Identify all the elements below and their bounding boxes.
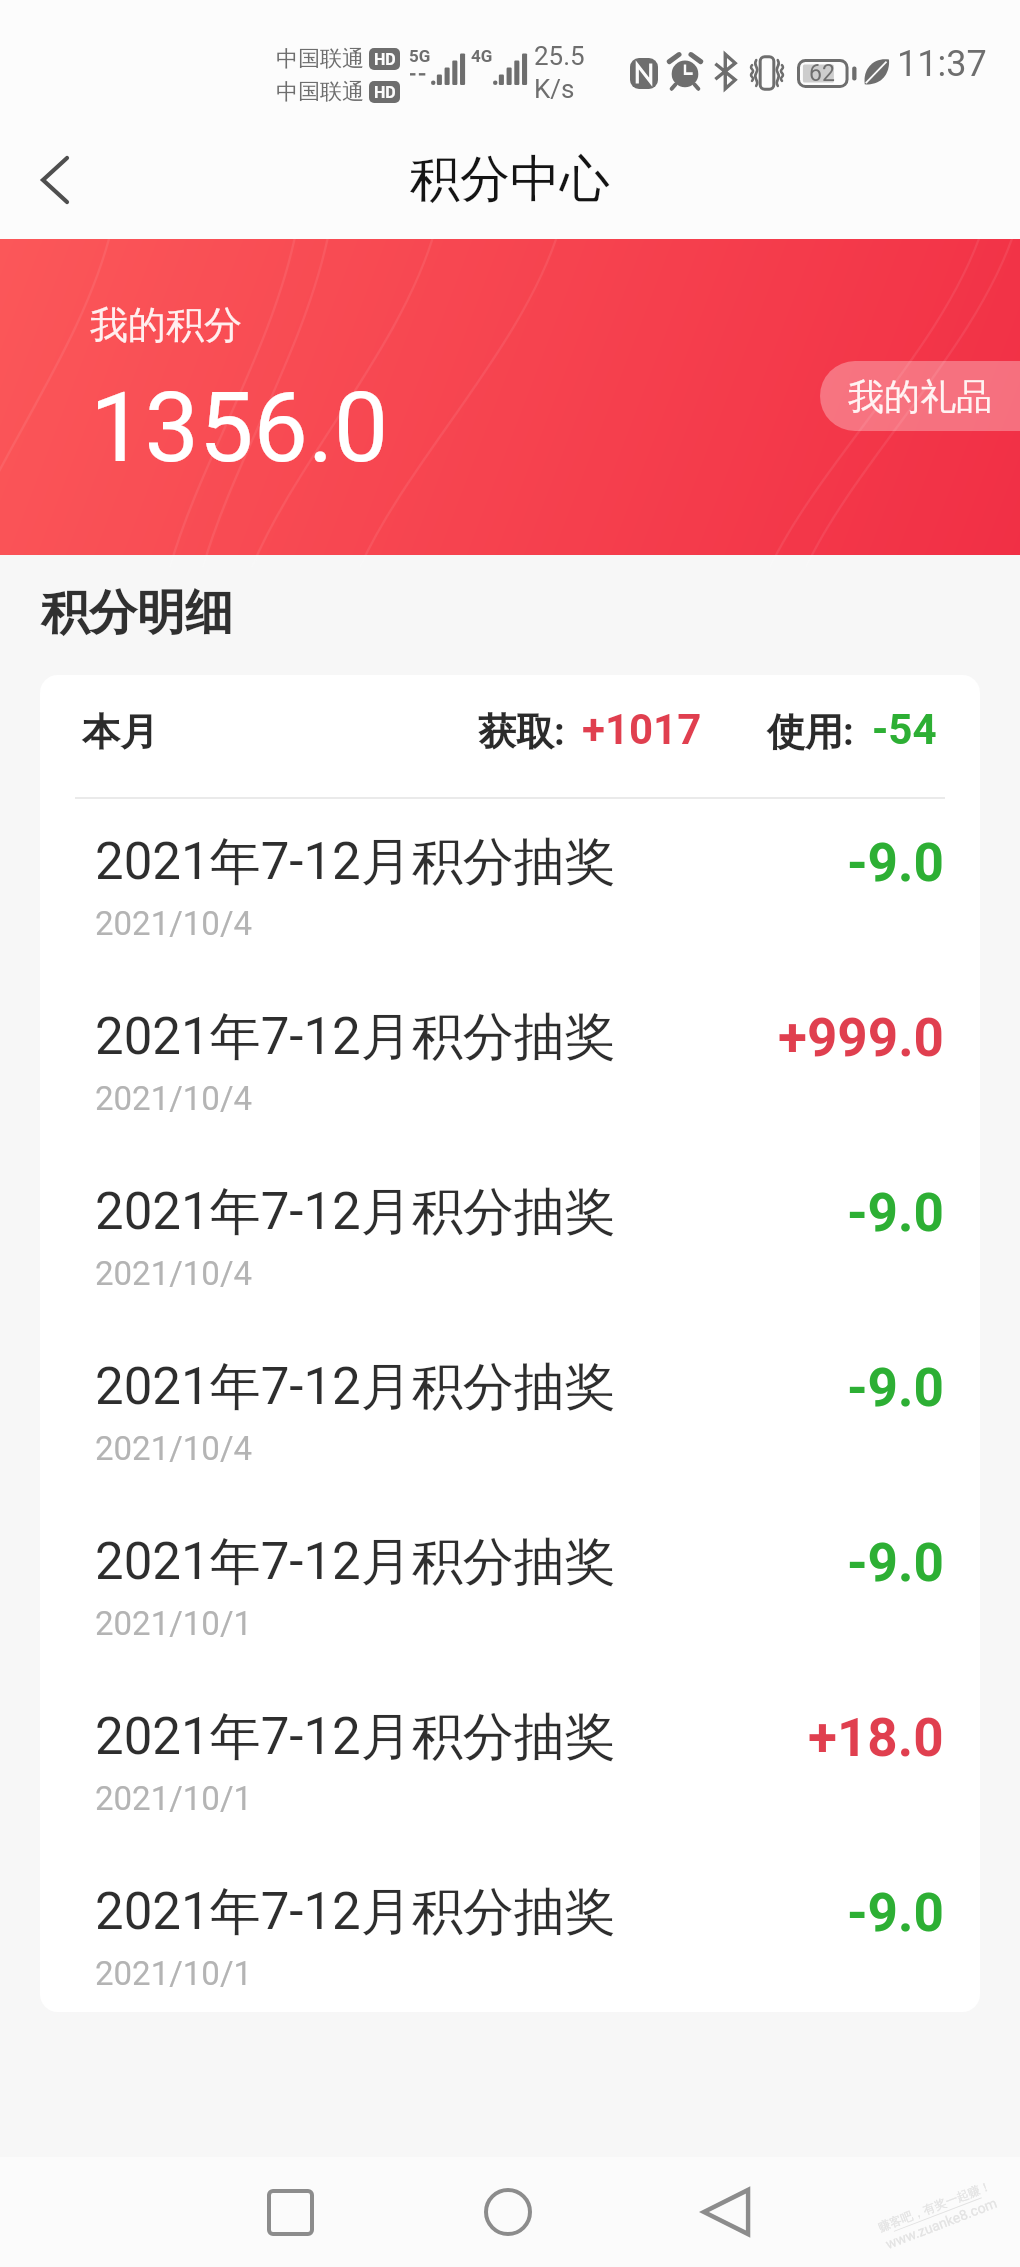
staticText: 2021年7-12月积分抽奖 — [95, 1530, 616, 1594]
staticText: -54 — [872, 705, 937, 754]
staticText: 5G — [409, 46, 431, 66]
staticText: -9.0 — [847, 1357, 944, 1419]
button[interactable]: Home — [465, 2169, 551, 2255]
staticText: 25.5 — [534, 41, 585, 71]
staticText: 使用: — [767, 708, 854, 756]
staticText: +999.0 — [778, 1007, 944, 1069]
staticText: 2021/10/4 — [95, 1079, 253, 1118]
staticText: 积分中心 — [410, 148, 610, 211]
staticText: +18.0 — [808, 1707, 944, 1769]
staticText: 2021年7-12月积分抽奖 — [95, 1355, 616, 1419]
staticText: 2021/10/4 — [95, 1429, 253, 1468]
button[interactable]: 2021年7-12月积分抽奖 — [40, 1149, 980, 1324]
staticText: 我的积分 — [90, 301, 242, 349]
staticText: HD — [374, 83, 396, 102]
staticText: 中国联通 — [276, 78, 364, 106]
staticText: 2021/10/1 — [95, 1779, 253, 1818]
staticText: 2021年7-12月积分抽奖 — [95, 1880, 616, 1944]
button[interactable]: 2021年7-12月积分抽奖 — [40, 1499, 980, 1674]
button[interactable]: Recents — [247, 2169, 333, 2255]
staticText: K/s — [534, 74, 575, 104]
staticText: 中国联通 — [276, 45, 364, 73]
staticText: 2021/10/4 — [95, 1254, 253, 1293]
staticText: 积分明细 — [41, 583, 233, 643]
staticText: +1017 — [582, 705, 702, 754]
staticText: 1356.0 — [90, 371, 389, 485]
staticText: 2021/10/4 — [95, 904, 253, 943]
staticText: www.zuanke8.com — [883, 2195, 999, 2252]
button[interactable]: 2021年7-12月积分抽奖 — [40, 974, 980, 1149]
button[interactable]: 2021年7-12月积分抽奖 — [40, 1324, 980, 1499]
staticText: 2021/10/1 — [95, 1954, 253, 1993]
button[interactable]: 2021年7-12月积分抽奖 — [40, 1674, 980, 1849]
staticText: 获取: — [478, 708, 565, 756]
staticText: -9.0 — [847, 832, 944, 894]
button[interactable]: Back — [12, 137, 98, 223]
staticText: 2021年7-12月积分抽奖 — [95, 1180, 616, 1244]
staticText: 2021年7-12月积分抽奖 — [95, 1005, 616, 1069]
staticText: 赚客吧，有奖一起赚！ — [876, 2178, 993, 2235]
staticText: 2021年7-12月积分抽奖 — [95, 1705, 616, 1769]
staticText: -9.0 — [847, 1182, 944, 1244]
button[interactable]: 2021年7-12月积分抽奖 — [40, 1849, 980, 2012]
staticText: 2021/10/1 — [95, 1604, 253, 1643]
staticText: 我的礼品 — [848, 374, 992, 419]
staticText: HD — [374, 50, 396, 69]
staticText: 62 — [809, 60, 835, 87]
staticText: 本月 — [82, 708, 158, 756]
button[interactable]: 我的礼品 — [820, 361, 1020, 431]
staticText: 4G — [471, 46, 493, 66]
staticText: 2021年7-12月积分抽奖 — [95, 830, 616, 894]
button[interactable]: 2021年7-12月积分抽奖 — [40, 799, 980, 974]
staticText: -9.0 — [847, 1882, 944, 1944]
staticText: 11:37 — [897, 43, 987, 85]
button[interactable]: Back — [683, 2169, 769, 2255]
staticText: -9.0 — [847, 1532, 944, 1594]
